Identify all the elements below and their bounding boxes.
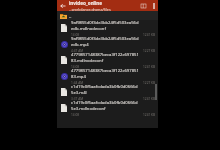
staticText: 83.mdlnodeconf (71, 58, 104, 64)
staticText: 1241 KB (143, 97, 156, 100)
staticText: 14:08 (71, 113, 80, 116)
staticText: c1d19c0f5aafcdada3b0fb0d0666d (71, 84, 138, 90)
staticText: 83.mp4 (71, 74, 86, 80)
button[interactable]: 9af9855d0f3de3bb24f5d503ea56d (57, 36, 158, 52)
staticText: 3:37 AM (71, 97, 84, 100)
staticText: 1227 KB (143, 81, 156, 84)
button[interactable]: More options (149, 0, 158, 11)
staticText: 14:08 (71, 65, 80, 68)
staticText: 1241 KB (143, 33, 156, 36)
staticText: 1241 KB (143, 113, 156, 116)
staticText: 5e3.m4l (71, 90, 87, 96)
staticText: c1d19c0f5aafcdada3b0fb0d0666d (71, 100, 138, 106)
staticText: …workdance.drama/files (69, 7, 111, 11)
staticText: 4:47 AM (71, 49, 84, 52)
staticText: 14:08 (71, 33, 80, 36)
staticText: edb.mp4 (71, 42, 89, 48)
staticText: 4779857148387beca3f122c697851 (71, 68, 139, 74)
button[interactable]: 9af9855d0f3de3bb24f5d503ea56d (57, 20, 158, 36)
button[interactable]: Navigate up (57, 0, 69, 11)
staticText: 5e3.mdlnodeconf (71, 106, 106, 112)
staticText: 9af9855d0f3de3bb24f5d503ea56d (71, 20, 139, 26)
button[interactable]: 4779857148387beca3f122c697851 (57, 68, 158, 84)
staticText: 9af9855d0f3de3bb24f5d503ea56d (71, 36, 139, 42)
staticText: .. (69, 13, 72, 19)
staticText: 1:44 AM (71, 81, 84, 84)
staticText: 1241 KB (143, 65, 156, 68)
button[interactable]: Change view (138, 0, 149, 11)
staticText: edb.mdlnodeconf (71, 26, 106, 32)
button[interactable]: 4779857148387beca3f122c697851 (57, 52, 158, 68)
staticText: 4779857148387beca3f122c697851 (71, 52, 139, 58)
staticText: invideo_online (69, 0, 103, 6)
staticText: 1227 KB (143, 49, 156, 52)
button[interactable]: c1d19c0f5aafcdada3b0fb0d0666d (57, 100, 158, 116)
button[interactable]: .. (57, 11, 158, 20)
button[interactable]: c1d19c0f5aafcdada3b0fb0d0666d (57, 84, 158, 100)
button[interactable]: invideo_online (69, 0, 138, 11)
